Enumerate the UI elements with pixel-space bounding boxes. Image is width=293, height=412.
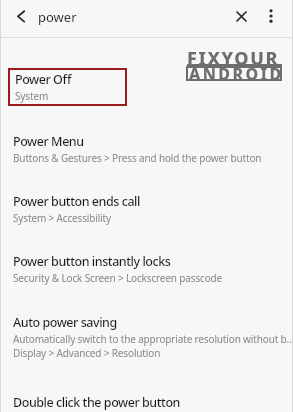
staticText: ANDROID (189, 63, 284, 85)
button[interactable] (259, 4, 283, 28)
button[interactable]: Power button instantly locks (13, 253, 223, 284)
button[interactable]: Auto power saving (13, 314, 292, 359)
button[interactable]: Power Off (15, 71, 71, 102)
staticText: power (38, 8, 77, 26)
staticText: Power button instantly locks (13, 253, 171, 270)
staticText: Power button ends call (13, 193, 140, 210)
button[interactable] (8, 4, 32, 28)
staticText: Display > Advanced > Resolution (13, 346, 161, 360)
staticText: Buttons & Gestures > Press and hold the … (13, 151, 262, 165)
staticText: System (15, 89, 49, 103)
button[interactable]: Power Menu (13, 133, 262, 164)
staticText: Power Menu (13, 133, 84, 150)
staticText: Auto power saving (13, 314, 117, 331)
staticText: Power Off (15, 71, 71, 88)
staticText: System > Accessibility (13, 211, 111, 225)
button[interactable] (229, 4, 253, 28)
staticText: FIXYOUR (187, 46, 280, 71)
button[interactable]: Power button ends call (13, 193, 140, 224)
button[interactable]: Double click the power button (13, 394, 181, 411)
staticText: Security & Lock Screen > Lockscreen pass… (13, 271, 223, 285)
staticText: Automatically switch to the appropriate … (13, 332, 292, 346)
staticText: Double click the power button (13, 394, 181, 411)
